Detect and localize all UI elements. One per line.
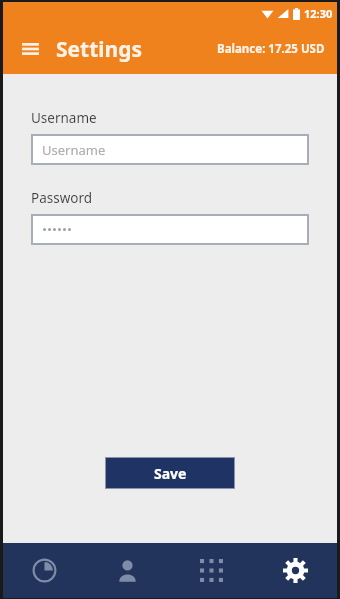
- staticText: Settings: [56, 35, 143, 64]
- staticText: Username: [42, 141, 106, 159]
- button[interactable]: Username: [31, 134, 309, 165]
- staticText: Balance: 17.25 USD: [217, 41, 325, 57]
- button[interactable]: Open navigation menu: [17, 36, 43, 62]
- staticText: 12:30: [304, 6, 333, 21]
- staticText: Username: [31, 109, 97, 127]
- button[interactable]: Settings: [253, 543, 337, 598]
- button[interactable]: Recent: [3, 543, 86, 598]
- button[interactable]: [31, 214, 309, 245]
- button[interactable]: Save: [105, 457, 235, 489]
- staticText: Password: [31, 189, 93, 207]
- button[interactable]: Apps: [169, 543, 253, 598]
- staticText: Save: [154, 464, 187, 483]
- button[interactable]: Profile: [86, 543, 169, 598]
